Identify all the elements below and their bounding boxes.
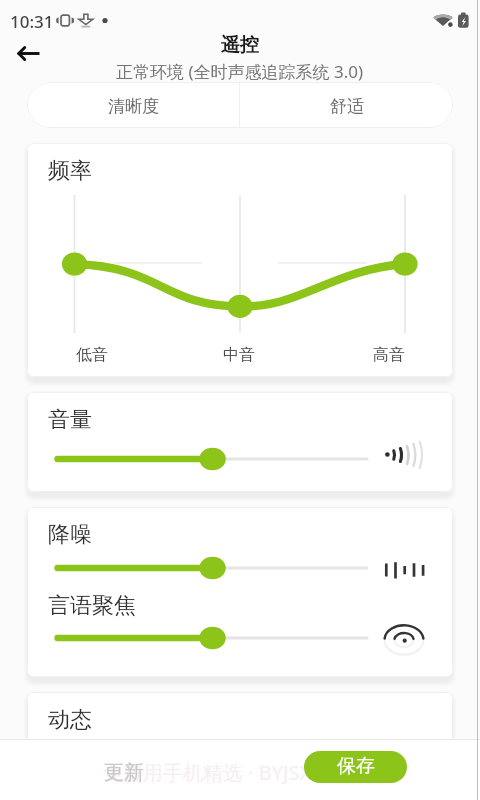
staticText: 清晰度 bbox=[108, 96, 159, 117]
staticText: 免费用手机精选 · BYJSXY.COM bbox=[103, 759, 372, 786]
staticText: 更新 bbox=[104, 760, 144, 785]
staticText: 频率 bbox=[48, 157, 92, 185]
staticText: 保存 bbox=[337, 754, 375, 778]
button[interactable]: Back bbox=[6, 31, 52, 77]
button[interactable]: 清晰度 bbox=[27, 82, 239, 128]
button[interactable] bbox=[48, 443, 378, 475]
staticText: 降噪 bbox=[48, 521, 92, 549]
staticText: 舒适 bbox=[330, 96, 364, 117]
staticText: 低音 bbox=[76, 345, 108, 365]
staticText: 动态 bbox=[48, 706, 92, 734]
button[interactable]: 保存 bbox=[304, 751, 407, 783]
button[interactable]: 舒适 bbox=[240, 82, 453, 128]
staticText: 言语聚焦 bbox=[48, 592, 136, 620]
staticText: 正常环境 (全时声感追踪系统 3.0) bbox=[116, 60, 364, 83]
button[interactable]: 更新 bbox=[88, 753, 160, 792]
staticText: 高音 bbox=[373, 345, 405, 365]
button[interactable] bbox=[48, 622, 378, 654]
staticText: 遥控 bbox=[221, 33, 259, 57]
staticText: 10:31 bbox=[10, 10, 54, 33]
staticText: 音量 bbox=[48, 406, 92, 434]
staticText: 中音 bbox=[223, 345, 255, 365]
button[interactable] bbox=[48, 552, 378, 584]
